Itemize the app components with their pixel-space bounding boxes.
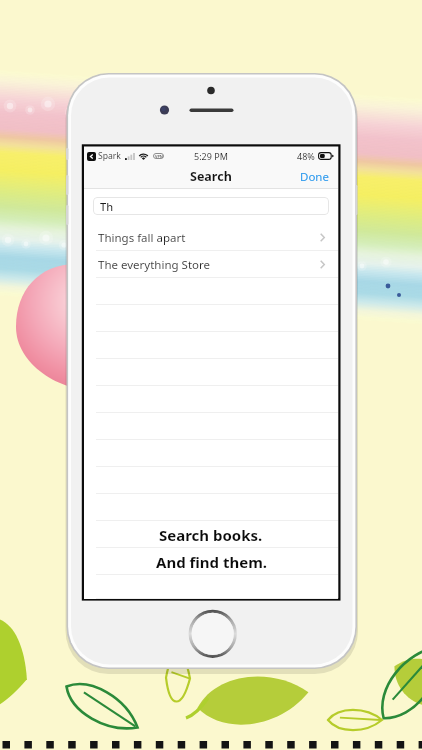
button[interactable]: The everything Store bbox=[84, 251, 338, 278]
button[interactable]: Back to Spark bbox=[87, 152, 96, 161]
button[interactable]: Th bbox=[93, 197, 329, 215]
staticText: 48% bbox=[297, 150, 315, 162]
staticText: Spark bbox=[98, 150, 121, 162]
staticText: Things fall apart bbox=[98, 230, 186, 246]
staticText: And find them. bbox=[156, 552, 267, 572]
staticText: Th bbox=[100, 199, 114, 214]
staticText: Done bbox=[300, 169, 329, 183]
staticText: 5:29 PM bbox=[194, 150, 228, 162]
button[interactable]: Done bbox=[291, 164, 338, 188]
staticText: Search bbox=[190, 168, 232, 185]
staticText: VPN bbox=[155, 154, 163, 159]
button[interactable]: Things fall apart bbox=[84, 224, 338, 251]
staticText: The everything Store bbox=[98, 257, 210, 273]
staticText: Search books. bbox=[159, 525, 263, 545]
